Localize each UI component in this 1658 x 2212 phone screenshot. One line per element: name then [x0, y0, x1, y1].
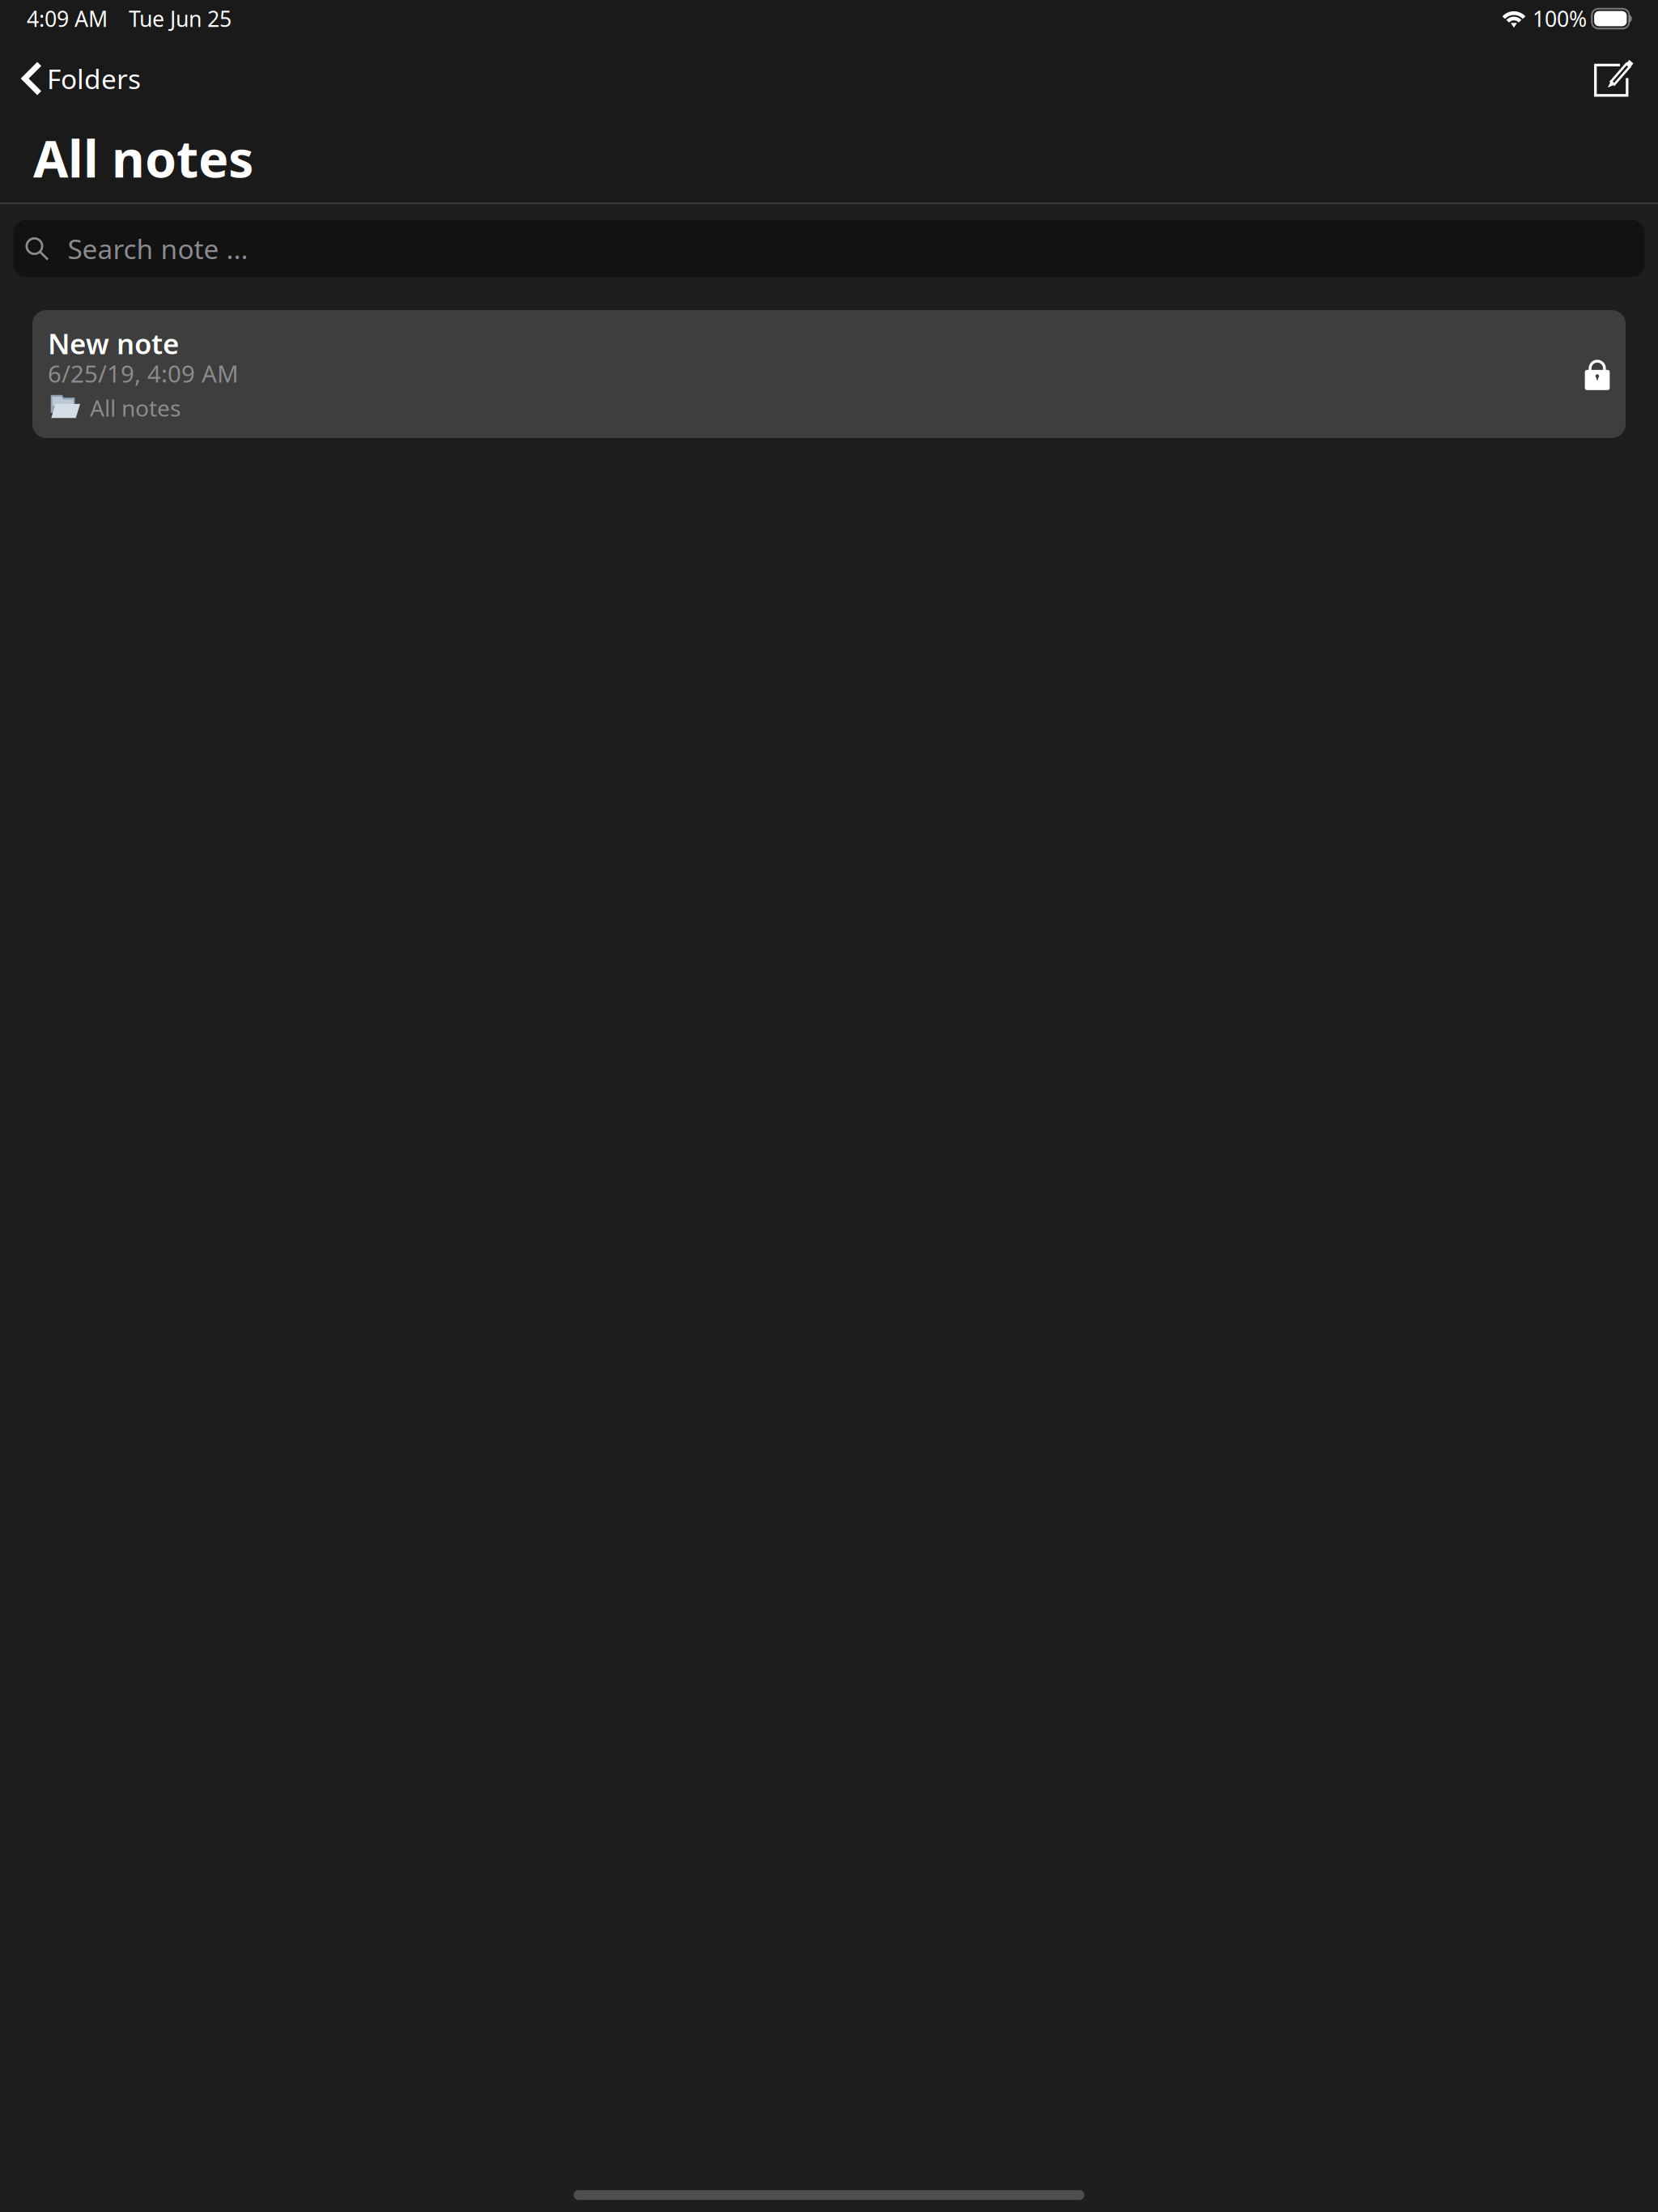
- staticText: Tue Jun 25: [129, 4, 232, 33]
- button[interactable]: Search note ...: [13, 220, 1645, 277]
- button[interactable]: Folders: [0, 47, 154, 101]
- staticText: 6/25/19, 4:09 AM: [48, 357, 239, 389]
- staticText: New note: [48, 325, 179, 362]
- staticText: All notes: [90, 393, 181, 423]
- button[interactable]: New note: [1580, 45, 1658, 103]
- staticText: 100%: [1533, 4, 1587, 33]
- button[interactable]: New note: [32, 310, 1626, 438]
- staticText: All notes: [33, 124, 253, 192]
- staticText: Folders: [47, 61, 141, 97]
- staticText: 4:09 AM: [27, 4, 108, 33]
- staticText: Search note ...: [68, 231, 248, 267]
